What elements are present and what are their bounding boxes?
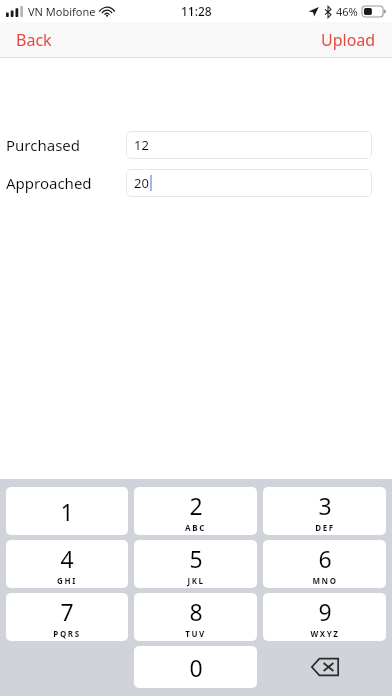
staticText: 12 xyxy=(134,136,149,154)
button[interactable]: Upload xyxy=(305,23,392,57)
staticText: 0 xyxy=(189,652,203,683)
staticText: 46% xyxy=(336,4,358,19)
staticText: JKL xyxy=(187,575,205,586)
button[interactable]: Delete xyxy=(263,646,386,688)
staticText: 3 xyxy=(318,490,332,521)
button[interactable]: 0 xyxy=(134,646,257,688)
staticText: 6 xyxy=(318,543,332,574)
button[interactable]: 3 xyxy=(263,487,386,535)
staticText: 2 xyxy=(189,490,203,521)
button[interactable]: Back xyxy=(0,23,68,57)
button[interactable]: 9 xyxy=(263,593,386,641)
staticText: 9 xyxy=(318,596,332,627)
staticText: 7 xyxy=(60,596,74,627)
staticText: 5 xyxy=(189,543,203,574)
staticText: 8 xyxy=(189,596,203,627)
button[interactable]: 6 xyxy=(263,540,386,588)
staticText: ABC xyxy=(185,522,206,533)
staticText: 20 xyxy=(134,174,149,192)
button[interactable]: 12 xyxy=(126,131,372,159)
button[interactable]: 8 xyxy=(134,593,257,641)
staticText: Back xyxy=(16,29,52,51)
staticText: Approached xyxy=(6,173,126,193)
staticText: WXYZ xyxy=(310,628,340,639)
button[interactable]: 2 xyxy=(134,487,257,535)
button[interactable]: 20 xyxy=(126,169,372,197)
staticText: 4 xyxy=(60,543,74,574)
staticText: Purchased xyxy=(6,135,126,155)
staticText: VN Mobifone xyxy=(28,4,96,19)
staticText: Upload xyxy=(321,29,376,51)
button[interactable]: 5 xyxy=(134,540,257,588)
staticText: GHI xyxy=(57,575,77,586)
staticText: 11:28 xyxy=(181,3,212,19)
button[interactable]: 7 xyxy=(6,593,128,641)
staticText: TUV xyxy=(185,628,206,639)
staticText: DEF xyxy=(315,522,335,533)
button[interactable]: 1 xyxy=(6,487,128,535)
staticText: PQRS xyxy=(53,628,81,639)
staticText: 1 xyxy=(60,496,74,527)
staticText: MNO xyxy=(312,575,338,586)
button[interactable]: 4 xyxy=(6,540,128,588)
